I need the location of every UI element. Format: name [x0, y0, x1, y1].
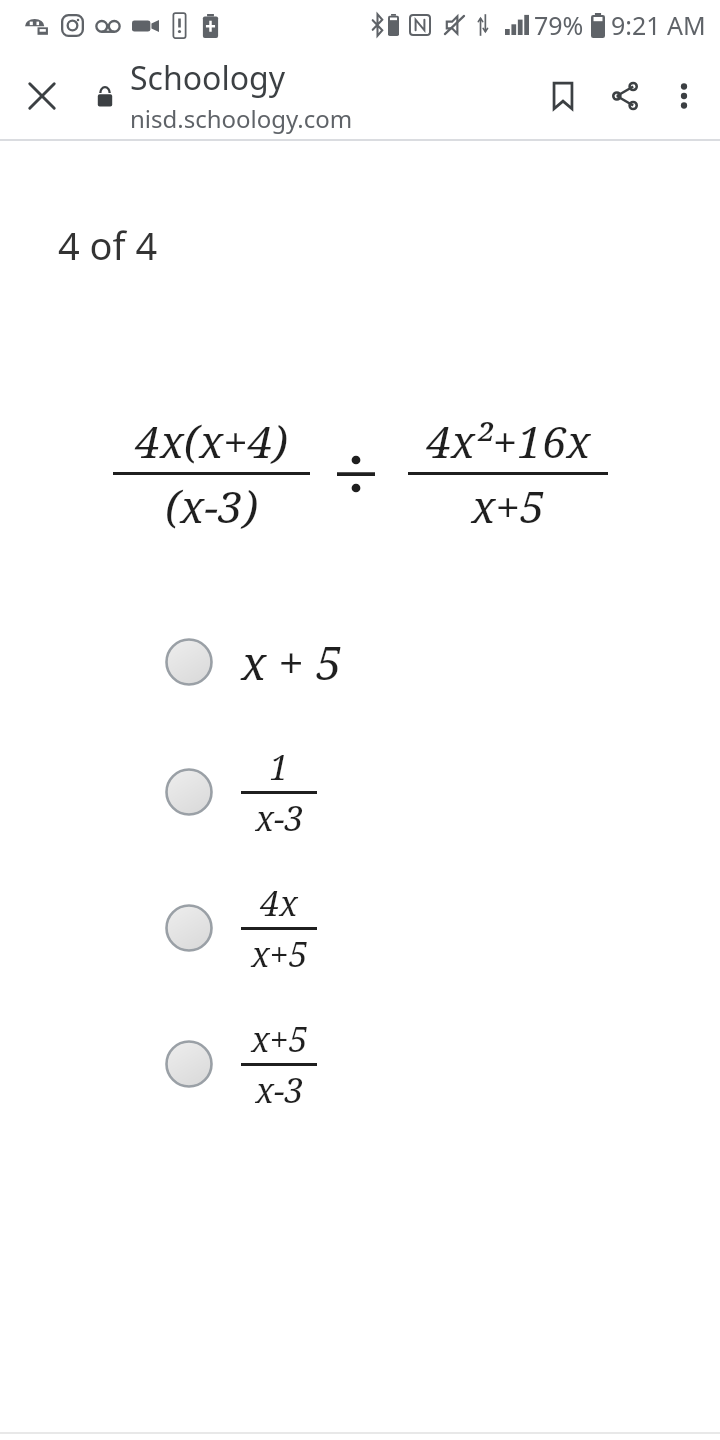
- button[interactable]: More options: [656, 68, 712, 124]
- button[interactable]: Close: [12, 66, 72, 126]
- staticText: 9:21 AM: [611, 8, 706, 42]
- staticText: x−3: [255, 1067, 304, 1113]
- staticText: 1: [269, 744, 289, 790]
- staticText: 4 of 4: [58, 219, 158, 271]
- staticText: x+5: [251, 931, 308, 977]
- staticText: 4x²+16x: [426, 411, 591, 471]
- button[interactable]: Option 4x over x plus 5: [0, 860, 720, 996]
- button[interactable]: Share: [594, 65, 656, 127]
- staticText: x + 5: [241, 631, 342, 694]
- button[interactable]: Option x plus 5 over x minus 3: [0, 996, 720, 1132]
- staticText: (x−3): [165, 476, 258, 536]
- staticText: x−3: [255, 795, 304, 841]
- button[interactable]: Option x + 5: [0, 600, 720, 724]
- staticText: x+5: [251, 1016, 308, 1062]
- staticText: Schoology: [130, 56, 286, 100]
- button[interactable]: Option 1 over x minus 3: [0, 724, 720, 860]
- button[interactable]: Bookmark: [532, 65, 594, 127]
- staticText: 4x(x+4): [135, 411, 288, 471]
- staticText: 4x: [260, 880, 298, 926]
- staticText: nisd.schoology.com: [130, 102, 353, 135]
- staticText: 79%: [534, 8, 584, 42]
- staticText: x+5: [471, 476, 545, 536]
